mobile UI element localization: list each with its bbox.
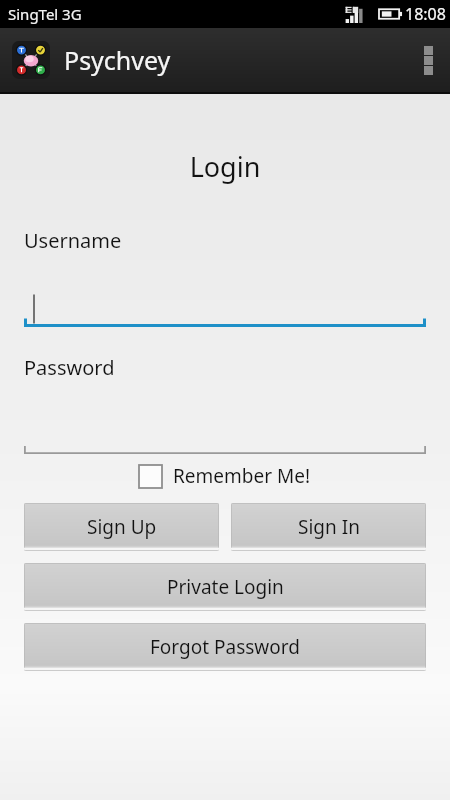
staticText: Forgot Password xyxy=(150,634,300,660)
staticText: Sign Up xyxy=(87,514,157,540)
staticText: Login xyxy=(24,148,426,185)
button[interactable]: Private Login xyxy=(24,563,426,611)
staticText: Sign In xyxy=(298,514,360,540)
button[interactable]: Forgot Password xyxy=(24,623,426,671)
staticText: Private Login xyxy=(167,574,284,600)
button[interactable]: Sign In xyxy=(231,503,426,551)
staticText: 18:08 xyxy=(405,3,446,25)
staticText: Psychvey xyxy=(64,43,171,77)
staticText: Username xyxy=(24,227,122,254)
staticText: Remember Me! xyxy=(173,463,311,489)
button[interactable]: Sign Up xyxy=(24,503,219,551)
button[interactable]: Remember Me! xyxy=(24,463,426,489)
button[interactable]: More options xyxy=(406,28,450,92)
staticText: SingTel 3G xyxy=(8,4,82,24)
staticText: Password xyxy=(24,354,115,381)
